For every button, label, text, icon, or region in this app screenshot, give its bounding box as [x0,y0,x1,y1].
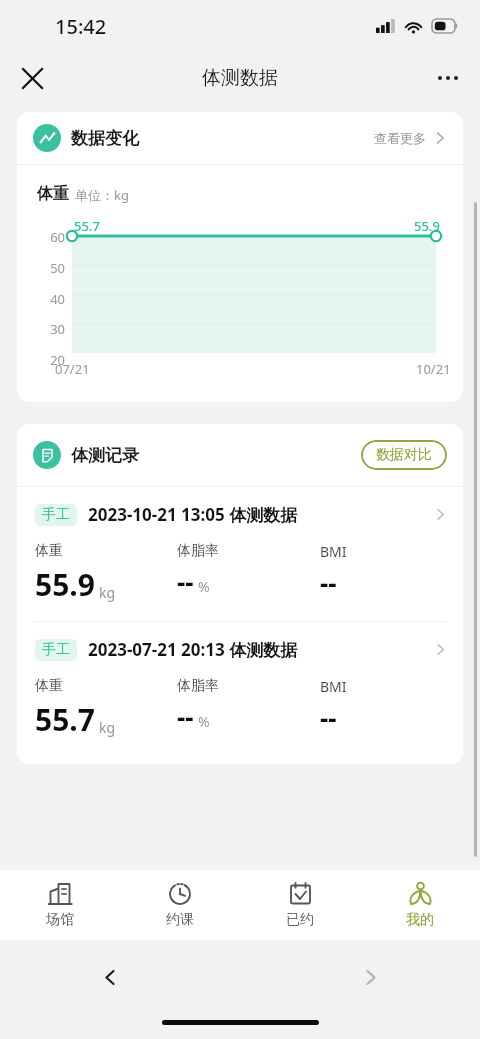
staticText: 40 [37,290,65,308]
button[interactable]: 数据变化 [17,112,463,164]
staticText: kg [99,718,116,737]
staticText: 场馆 [46,911,74,929]
staticText: 查看更多 [374,130,426,146]
staticText: 55.9 [35,564,95,605]
staticText: 10/21 [416,360,451,378]
staticText: 已约 [286,911,314,929]
button[interactable]: 手工 [17,487,463,621]
staticText: 55.7 [74,217,100,235]
staticText: 55.9 [414,217,440,235]
staticText: BMI [320,677,347,696]
staticText: % [198,577,210,596]
staticText: 约课 [166,911,194,929]
button[interactable]: 手工 [17,622,463,756]
staticText: 体测数据 [202,66,278,90]
button[interactable]: 约课 [120,870,240,940]
button[interactable]: Back [91,958,129,996]
staticText: 手工 [42,506,70,524]
staticText: -- [177,564,194,599]
staticText: 15:42 [55,13,107,40]
staticText: BMI [320,542,347,561]
staticText: 07/21 [55,360,90,378]
staticText: -- [177,699,194,734]
button[interactable]: Close [10,56,54,100]
staticText: 我的 [406,911,434,929]
button[interactable]: Forward [351,958,389,996]
button[interactable]: 数据对比 [361,440,447,470]
staticText: 50 [37,259,65,277]
staticText: 手工 [42,641,70,659]
staticText: 单位：kg [75,186,129,204]
staticText: 体脂率 [177,542,219,560]
button[interactable]: 场馆 [0,870,120,940]
staticText: -- [320,565,337,600]
staticText: 2023-10-21 13:05 体测数据 [88,503,298,526]
staticText: 体脂率 [177,677,219,695]
staticText: % [198,712,210,731]
staticText: 体重 [35,677,63,695]
staticText: 数据对比 [376,446,432,464]
button[interactable]: More options [426,56,470,100]
staticText: 60 [37,228,65,246]
staticText: 体重 [37,184,69,204]
staticText: 体测记录 [71,445,139,466]
staticText: 55.7 [35,699,95,740]
button[interactable]: 我的 [360,870,480,940]
staticText: 30 [37,320,65,338]
staticText: 体重 [35,542,63,560]
staticText: 数据变化 [71,128,139,149]
button[interactable]: 已约 [240,870,360,940]
staticText: -- [320,700,337,735]
staticText: 20 [37,351,65,369]
staticText: 2023-07-21 20:13 体测数据 [88,638,298,661]
staticText: kg [99,583,116,602]
